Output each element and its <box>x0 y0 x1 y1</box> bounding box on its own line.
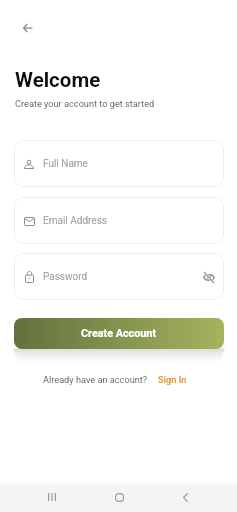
button[interactable]: Back <box>171 483 199 511</box>
staticText: Welcome <box>15 68 101 92</box>
button[interactable]: Recents <box>38 483 66 511</box>
staticText: Full Name <box>43 158 88 170</box>
staticText: Already have an account? <box>43 374 148 385</box>
staticText: Password <box>43 271 88 283</box>
button[interactable]: Show password <box>199 267 219 287</box>
staticText: Sign In <box>158 374 187 385</box>
staticText: Create Account <box>81 327 157 340</box>
button[interactable]: Create Account <box>14 318 224 349</box>
button[interactable]: Email Address <box>14 197 224 244</box>
button[interactable]: Sign In <box>158 374 187 385</box>
staticText: Create your account to get started <box>15 98 155 109</box>
button[interactable]: Full Name <box>14 140 224 187</box>
staticText: Email Address <box>43 215 107 227</box>
button[interactable]: Back <box>11 12 43 44</box>
button[interactable]: Password <box>14 253 224 300</box>
button[interactable]: Home <box>105 483 133 511</box>
